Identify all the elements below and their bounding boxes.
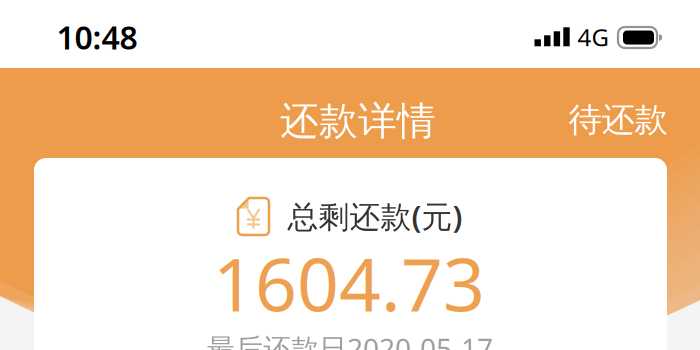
staticText: 总剩还款(元) [287, 196, 462, 236]
staticText: 待还款 [568, 99, 667, 140]
staticText: 1604.73 [213, 234, 485, 332]
staticText: 还款详情 [280, 97, 436, 145]
staticText: 10:48 [56, 16, 137, 58]
staticText: 4G [577, 21, 608, 53]
staticText: 最后还款日2020-05-17 [207, 329, 493, 350]
button[interactable]: 待还款 [554, 77, 681, 162]
